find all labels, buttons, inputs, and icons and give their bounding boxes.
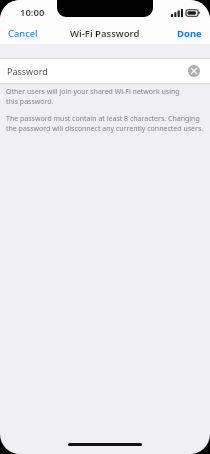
- staticText: Done: [177, 27, 202, 40]
- staticText: Password: [7, 65, 48, 77]
- staticText: 10:00: [20, 6, 45, 19]
- button[interactable]: Done: [169, 24, 210, 43]
- staticText: Cancel: [8, 27, 38, 40]
- button[interactable]: Clear text: [188, 65, 200, 77]
- staticText: Wi-Fi Password: [70, 27, 140, 40]
- button[interactable]: Password: [0, 58, 210, 83]
- staticText: The password must contain at least 8 cha…: [6, 114, 204, 134]
- button[interactable]: Cancel: [0, 24, 46, 43]
- staticText: Other users will join your shared Wi-Fi …: [6, 87, 188, 107]
